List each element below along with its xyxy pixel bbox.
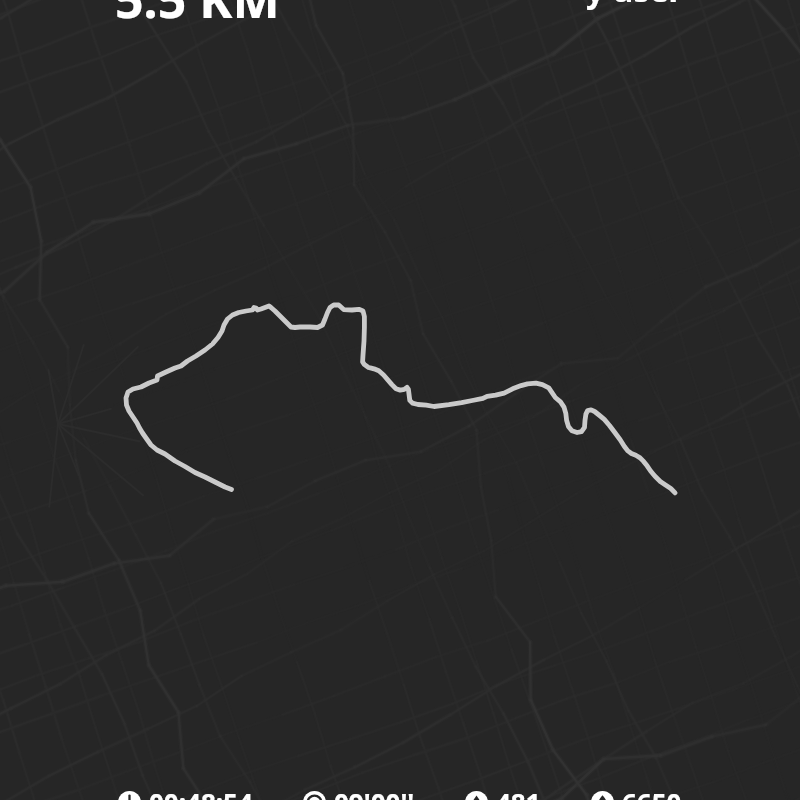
button[interactable]: Average pace 9 minutes per kilometre bbox=[303, 785, 415, 800]
staticText: 5.5 KM bbox=[115, 0, 280, 33]
button[interactable]: Recorded by user bbox=[0, 0, 683, 12]
staticText: y user bbox=[586, 0, 683, 12]
button[interactable]: Distance 5.5 kilometres bbox=[0, 0, 397, 33]
staticText: 6650 bbox=[622, 785, 682, 800]
staticText: 09'00'' bbox=[334, 785, 415, 800]
staticText: 00:48:54 bbox=[149, 785, 253, 800]
button[interactable]: 6650 calories bbox=[591, 785, 682, 800]
button[interactable]: Elevation gain 481 metres bbox=[465, 785, 541, 800]
button[interactable]: Duration 48 minutes 54 seconds bbox=[118, 785, 253, 800]
staticText: 481 bbox=[496, 785, 541, 800]
